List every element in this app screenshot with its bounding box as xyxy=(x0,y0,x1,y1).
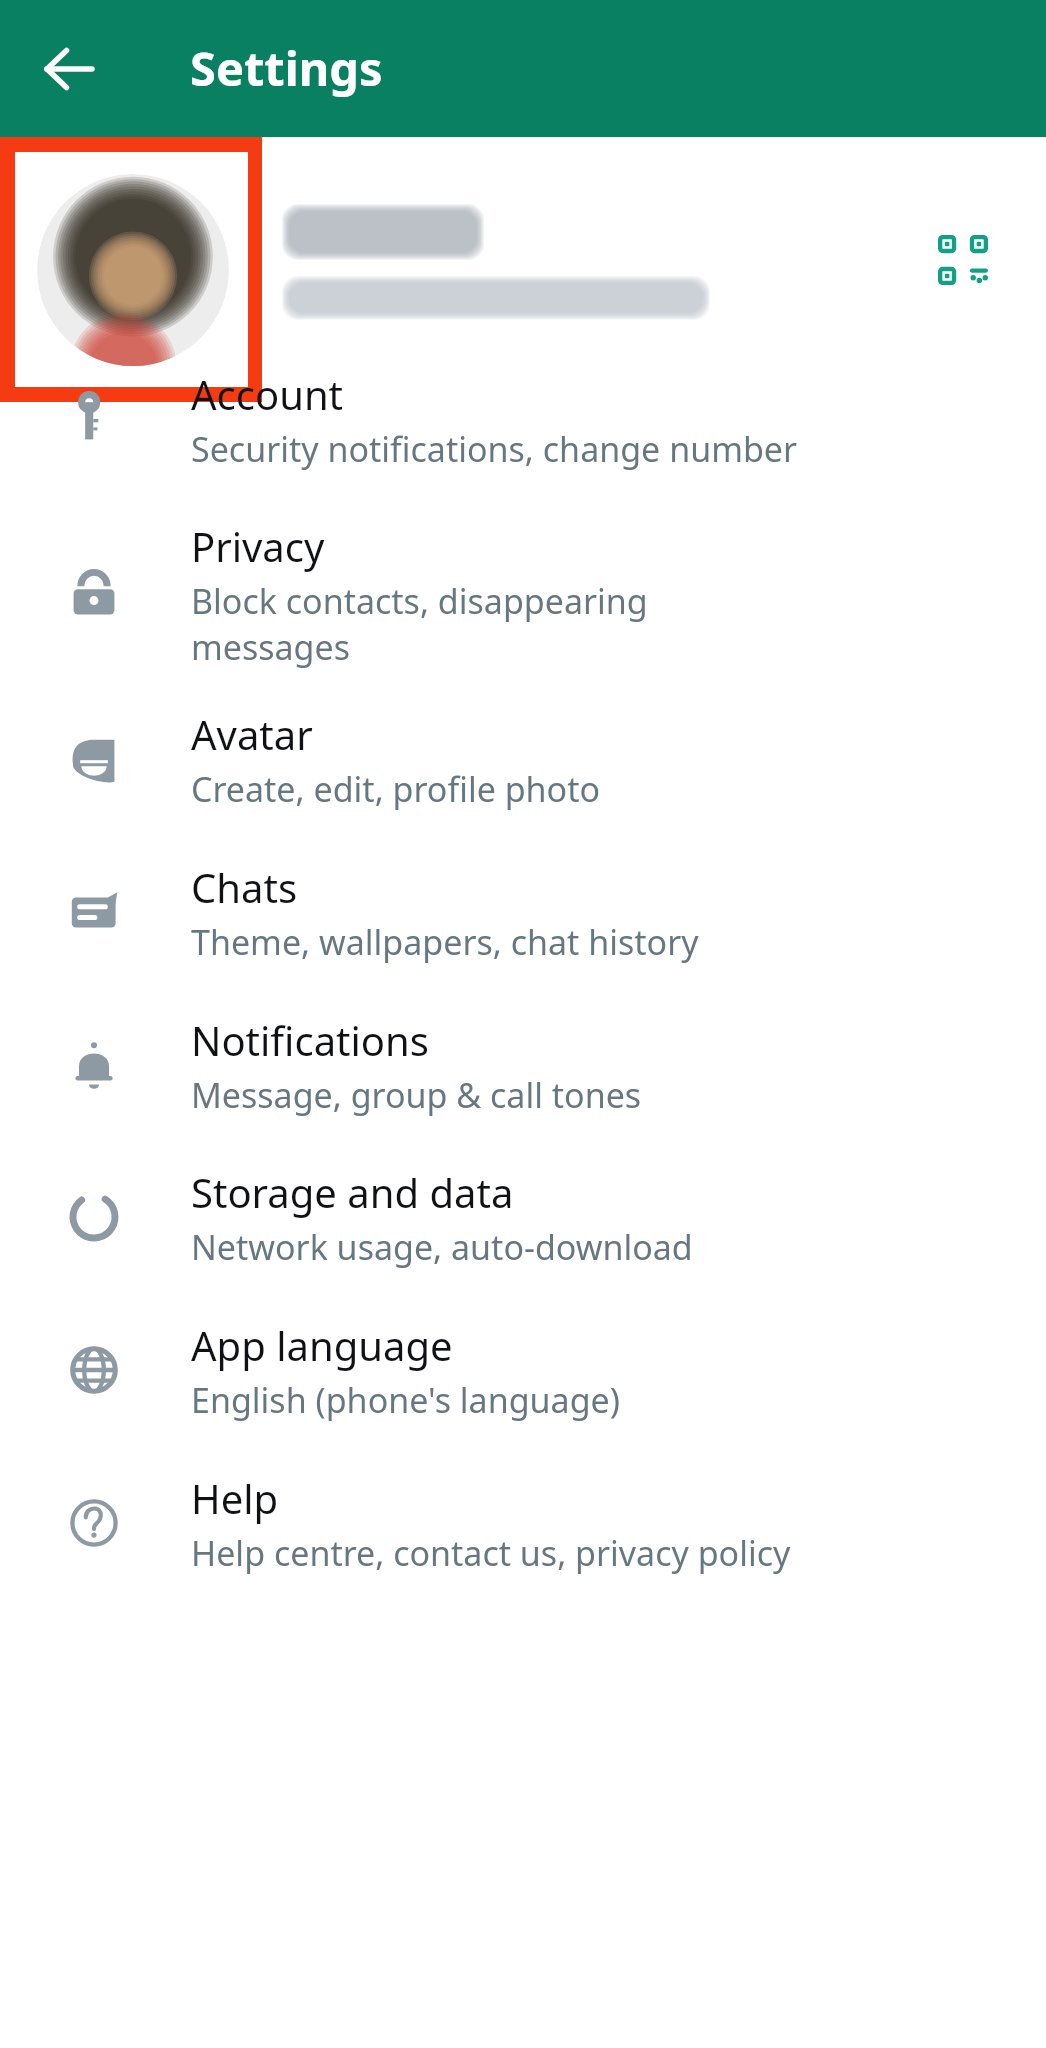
staticText: Avatar xyxy=(191,707,313,761)
staticText: Block contacts, disappearing messages xyxy=(191,578,648,670)
staticText: Network usage, auto-download xyxy=(191,1224,693,1270)
staticText: Message, group & call tones xyxy=(191,1072,642,1118)
button[interactable]: Privacy xyxy=(0,495,1046,693)
button[interactable]: QR code xyxy=(913,210,1013,310)
button[interactable]: Storage and data xyxy=(0,1141,1046,1293)
button[interactable]: App language xyxy=(0,1294,1046,1446)
staticText: Theme, wallpapers, chat history xyxy=(191,919,699,965)
staticText: Help xyxy=(191,1471,279,1525)
button[interactable] xyxy=(0,137,1046,402)
button[interactable]: Help xyxy=(0,1447,1046,1599)
button[interactable]: Avatar xyxy=(0,683,1046,835)
staticText: Help centre, contact us, privacy policy xyxy=(191,1530,791,1576)
button[interactable]: Chats xyxy=(0,836,1046,988)
staticText: Account xyxy=(191,367,344,421)
staticText: App language xyxy=(191,1318,453,1372)
button[interactable]: Account xyxy=(0,343,1046,495)
staticText: Notifications xyxy=(191,1013,429,1067)
staticText: English (phone's language) xyxy=(191,1377,620,1423)
staticText: Privacy xyxy=(191,519,325,573)
button[interactable]: Back xyxy=(20,20,118,118)
staticText: Storage and data xyxy=(191,1165,514,1219)
button[interactable]: Notifications xyxy=(0,989,1046,1141)
staticText: Security notifications, change number xyxy=(191,426,798,472)
staticText: Chats xyxy=(191,860,298,914)
staticText: Create, edit, profile photo xyxy=(191,766,601,812)
staticText: Settings xyxy=(190,36,383,100)
